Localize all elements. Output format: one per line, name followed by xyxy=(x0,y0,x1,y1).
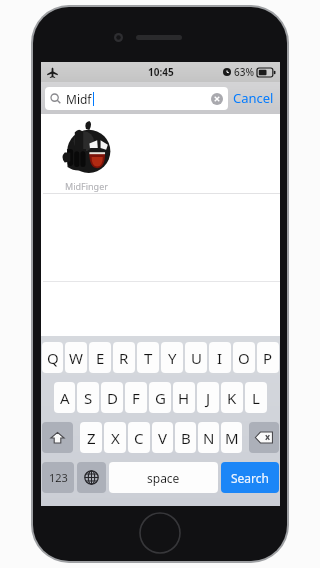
button[interactable]: C xyxy=(128,422,150,453)
staticText: V xyxy=(158,428,168,448)
button[interactable]: 123 xyxy=(42,462,74,493)
button[interactable]: F xyxy=(125,382,147,413)
staticText: 10:45 xyxy=(148,65,174,79)
staticText: A xyxy=(60,388,70,408)
button[interactable]: space xyxy=(109,462,218,493)
button[interactable]: Cancel xyxy=(227,82,280,114)
staticText: J xyxy=(206,388,211,408)
staticText: 123 xyxy=(49,470,68,485)
button[interactable]: I xyxy=(209,342,231,373)
staticText: R xyxy=(119,348,129,368)
button[interactable]: O xyxy=(233,342,255,373)
staticText: Q xyxy=(47,348,59,368)
staticText: MidFinger xyxy=(65,180,108,192)
button[interactable]: Z xyxy=(80,422,102,453)
staticText: B xyxy=(181,428,191,448)
button[interactable]: Shift xyxy=(42,422,73,453)
staticText: O xyxy=(238,348,250,368)
staticText: K xyxy=(227,388,237,408)
button[interactable]: W xyxy=(65,342,87,373)
button[interactable]: Q xyxy=(42,342,63,373)
button[interactable]: Clear text xyxy=(211,93,223,105)
button[interactable]: U xyxy=(185,342,207,373)
staticText: F xyxy=(132,388,140,408)
staticText: T xyxy=(144,348,153,368)
button[interactable]: T xyxy=(137,342,159,373)
button[interactable]: G xyxy=(149,382,171,413)
button[interactable]: S xyxy=(77,382,99,413)
button[interactable]: Search xyxy=(221,462,279,493)
button[interactable]: X xyxy=(104,422,126,453)
button[interactable]: K xyxy=(221,382,243,413)
button[interactable]: H xyxy=(173,382,195,413)
staticText: Y xyxy=(168,348,177,368)
staticText: L xyxy=(252,388,260,408)
button[interactable]: N xyxy=(198,422,219,453)
other: Airplane mode xyxy=(47,67,58,78)
button[interactable]: V xyxy=(152,422,173,453)
staticText: S xyxy=(84,388,93,408)
button[interactable]: M xyxy=(221,422,242,453)
staticText: W xyxy=(69,348,83,368)
button[interactable]: L xyxy=(245,382,267,413)
staticText: P xyxy=(263,348,273,368)
button[interactable]: Change keyboard language xyxy=(77,462,106,493)
staticText: N xyxy=(203,428,215,448)
staticText: D xyxy=(107,388,118,408)
staticText: U xyxy=(191,348,202,368)
button[interactable]: J xyxy=(197,382,219,413)
staticText: X xyxy=(111,428,120,448)
button[interactable]: E xyxy=(89,342,111,373)
staticText: Search xyxy=(231,470,269,486)
button[interactable]: MidFinger sticker pack xyxy=(50,120,122,192)
staticText: Midf xyxy=(66,91,92,107)
staticText: E xyxy=(96,348,105,368)
button[interactable]: Backspace xyxy=(249,422,279,453)
staticText: Z xyxy=(87,428,96,448)
staticText: Cancel xyxy=(233,89,274,107)
button[interactable]: D xyxy=(101,382,123,413)
button[interactable]: A xyxy=(54,382,75,413)
staticText: C xyxy=(134,428,144,448)
staticText: H xyxy=(178,388,190,408)
button[interactable]: B xyxy=(175,422,196,453)
button[interactable]: R xyxy=(113,342,135,373)
staticText: 63% xyxy=(234,65,254,79)
button[interactable]: Y xyxy=(161,342,183,373)
staticText: I xyxy=(217,348,223,368)
staticText: G xyxy=(155,388,166,408)
staticText: space xyxy=(147,470,180,486)
button[interactable]: P xyxy=(257,342,279,373)
staticText: M xyxy=(225,428,239,448)
button[interactable]: Midf xyxy=(45,87,228,110)
other: MidFinger sticker pack xyxy=(58,120,114,176)
